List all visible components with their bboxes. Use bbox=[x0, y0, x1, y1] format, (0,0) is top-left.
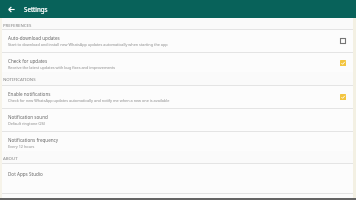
staticText: Default ringtone (26) bbox=[8, 121, 46, 126]
button[interactable]: Check for updates bbox=[0, 53, 356, 72]
button[interactable]: Notifications frequency bbox=[0, 132, 356, 151]
staticText: Notification sound bbox=[8, 114, 48, 120]
button[interactable]: Dot Apps Studio bbox=[0, 164, 356, 193]
button[interactable]: Back bbox=[4, 2, 18, 16]
button[interactable]: Enabled, checkbox bbox=[338, 58, 348, 68]
button[interactable]: Auto-download updates bbox=[0, 30, 356, 52]
staticText: Enable notifications bbox=[8, 91, 51, 97]
staticText: ABOUT bbox=[3, 155, 18, 161]
staticText: Check for updates bbox=[8, 58, 48, 64]
button[interactable]: Notification sound bbox=[0, 109, 356, 131]
staticText: Every 12 hours bbox=[8, 144, 35, 149]
staticText: NOTIFICATIONS bbox=[3, 76, 36, 82]
staticText: Auto-download updates bbox=[8, 35, 60, 41]
staticText: PREFERENCES bbox=[3, 22, 32, 28]
button[interactable]: Disabled, checkbox bbox=[338, 36, 348, 46]
staticText: Check for new WhatsApp updates automatic… bbox=[8, 98, 170, 103]
staticText: Settings bbox=[24, 5, 48, 13]
staticText: Start to download and install new WhatsA… bbox=[8, 42, 168, 47]
button[interactable]: Enable notifications bbox=[0, 86, 356, 108]
staticText: Dot Apps Studio bbox=[8, 171, 43, 177]
staticText: Receive the latest updates with bug fixe… bbox=[8, 65, 116, 70]
staticText: Notifications frequency bbox=[8, 137, 59, 143]
button[interactable]: Enabled, checkbox bbox=[338, 92, 348, 102]
